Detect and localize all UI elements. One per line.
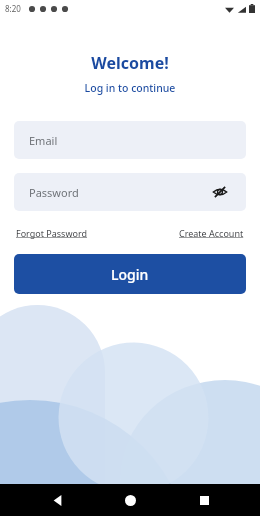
button[interactable]: Back: [40, 484, 74, 516]
button[interactable]: Recents: [187, 484, 221, 516]
staticText: Forgot Password: [16, 227, 88, 239]
staticText: Password: [29, 185, 79, 200]
button[interactable]: Show password: [209, 181, 231, 203]
staticText: Email: [29, 133, 58, 148]
button[interactable]: Email: [14, 121, 246, 159]
button[interactable]: Create Account: [179, 227, 244, 239]
button[interactable]: Login: [14, 254, 246, 294]
button[interactable]: Forgot Password: [16, 227, 88, 239]
staticText: Welcome!: [0, 52, 260, 74]
staticText: Login: [111, 265, 149, 284]
button[interactable]: Password: [14, 173, 246, 211]
staticText: Log in to continue: [0, 81, 260, 95]
staticText: 8:20: [5, 3, 21, 14]
staticText: Create Account: [179, 227, 244, 239]
button[interactable]: Home: [113, 484, 147, 516]
